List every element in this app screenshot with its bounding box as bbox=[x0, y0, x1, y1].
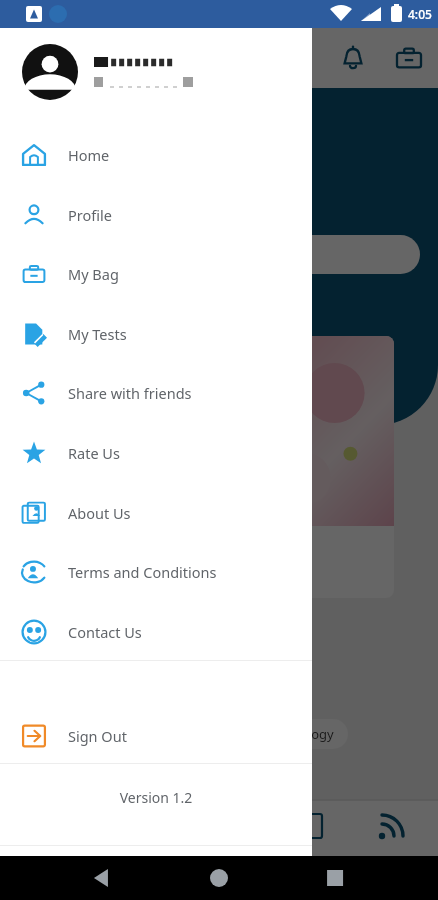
staticText: Profile bbox=[68, 205, 112, 225]
staticText: Contact Us bbox=[68, 622, 142, 642]
staticText: Home bbox=[68, 145, 110, 165]
button[interactable]: My Bag bbox=[394, 43, 424, 73]
button[interactable] bbox=[196, 336, 394, 598]
button[interactable]: Terms and Conditions bbox=[0, 546, 312, 598]
staticText: Version 1.2 bbox=[0, 788, 312, 807]
button[interactable]: About Us bbox=[0, 487, 312, 539]
staticText: Rate Us bbox=[68, 443, 120, 463]
button[interactable] bbox=[0, 28, 312, 116]
staticText: 4:05 bbox=[408, 6, 432, 22]
staticText: Technology bbox=[264, 725, 334, 743]
staticText: Terms and Conditions bbox=[68, 562, 217, 582]
button[interactable]: Contact Us bbox=[0, 606, 312, 658]
button[interactable]: Sign Out bbox=[0, 710, 312, 762]
staticText: My Bag bbox=[68, 264, 119, 284]
staticText: Sign Out bbox=[68, 726, 127, 746]
button[interactable] bbox=[22, 235, 420, 274]
button[interactable]: Notifications bbox=[338, 43, 368, 73]
staticText: Share with friends bbox=[68, 383, 192, 403]
button[interactable]: Technology bbox=[250, 719, 348, 749]
button[interactable]: Rate Us bbox=[0, 427, 312, 479]
button[interactable]: My Tests bbox=[0, 308, 312, 360]
button[interactable]: My Bag bbox=[0, 248, 312, 300]
staticText: My Tests bbox=[68, 324, 127, 344]
button[interactable]: Profile bbox=[0, 189, 312, 241]
button[interactable]: Share with friends bbox=[0, 367, 312, 419]
staticText: About Us bbox=[68, 503, 131, 523]
button[interactable]: Home bbox=[0, 129, 312, 181]
